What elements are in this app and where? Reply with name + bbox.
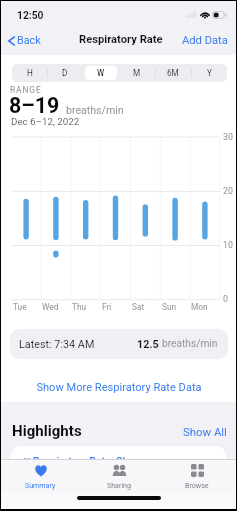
button[interactable]: Y: [191, 64, 227, 82]
staticText: Dec 6–12, 2022: [11, 116, 80, 127]
button[interactable]: D: [47, 64, 83, 82]
staticText: Sun: [162, 302, 177, 312]
staticText: Y: [207, 68, 212, 78]
staticText: 30: [223, 132, 233, 142]
staticText: D: [62, 68, 68, 78]
staticText: Fri: [102, 302, 112, 312]
staticText: 12:50: [17, 9, 44, 21]
staticText: M: [133, 68, 141, 78]
staticText: 8–19: [9, 93, 60, 118]
button[interactable]: Browse tab: [158, 460, 236, 493]
button[interactable]: Sharing tab: [80, 460, 158, 493]
button[interactable]: Show All: [176, 421, 234, 442]
staticText: Browse: [185, 481, 209, 489]
staticText: Respiratory Rate: Sleep: [33, 455, 143, 467]
staticText: Highlights: [12, 422, 82, 440]
staticText: 20: [223, 186, 233, 196]
staticText: RANGE: [10, 85, 42, 95]
button[interactable]: Summary tab: [1, 460, 80, 493]
staticText: Summary: [25, 481, 56, 489]
staticText: Back: [17, 34, 41, 47]
button[interactable]: Back: [4, 31, 45, 50]
staticText: Wed: [42, 302, 59, 312]
staticText: Show All: [183, 425, 227, 438]
staticText: H: [27, 68, 33, 78]
staticText: 12.5: [137, 338, 159, 351]
staticText: breaths/min: [162, 338, 218, 350]
button[interactable]: Respiratory Rate: Sleep: [11, 446, 226, 476]
button[interactable]: Add Data: [174, 31, 236, 50]
button[interactable]: H: [12, 64, 47, 82]
staticText: Sharing: [107, 481, 132, 489]
staticText: Show More Respiratory Rate Data: [36, 381, 202, 394]
button[interactable]: Latest: 7:34 AM: [10, 329, 228, 359]
staticText: 0: [223, 294, 228, 304]
staticText: Mon: [191, 302, 208, 312]
button[interactable]: 6M: [155, 64, 191, 82]
staticText: Respiratory Rate: [79, 33, 163, 46]
staticText: Latest: 7:34 AM: [19, 338, 95, 351]
button[interactable]: W: [83, 64, 119, 82]
staticText: Add Data: [182, 34, 228, 47]
staticText: breaths/min: [66, 104, 124, 116]
staticText: 6M: [167, 68, 179, 78]
staticText: Tue: [13, 302, 27, 312]
button[interactable]: Show More Respiratory Rate Data: [1, 378, 236, 397]
staticText: 10: [223, 240, 233, 250]
staticText: W: [97, 68, 105, 78]
staticText: Thu: [72, 302, 87, 312]
button[interactable]: M: [119, 64, 155, 82]
staticText: Sat: [132, 302, 145, 312]
